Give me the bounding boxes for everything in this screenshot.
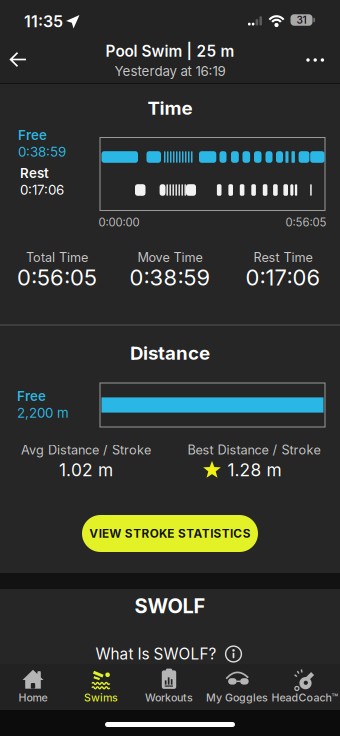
staticText: 1.28 m [227, 460, 281, 480]
staticText: Workouts [145, 691, 193, 704]
staticText: 0:17:06 [20, 182, 64, 198]
button[interactable]: HeadCoach™ [270, 664, 340, 708]
staticText: Free [18, 127, 47, 143]
staticText: Distance [130, 342, 210, 364]
button[interactable]: Swims [66, 664, 136, 708]
staticText: Rest Time [253, 250, 312, 265]
button[interactable]: My Goggles [202, 664, 272, 708]
staticText: 1.02 m [59, 460, 113, 480]
staticText: Best Distance / Stroke [187, 442, 320, 457]
staticText: 0:38:59 [129, 264, 210, 291]
button[interactable]: More options [293, 38, 337, 82]
staticText: Free [17, 388, 46, 404]
button[interactable]: Back [2, 37, 46, 81]
button[interactable]: VIEW STROKE STATISTICS [82, 515, 258, 552]
button[interactable]: Home [0, 664, 68, 708]
staticText: 0:00:00 [98, 216, 139, 229]
staticText: 2,200 m [17, 405, 69, 421]
staticText: Swims [84, 691, 118, 704]
button[interactable]: Workouts [134, 664, 204, 708]
staticText: 0:17:06 [245, 264, 320, 291]
staticText: 31 [296, 14, 306, 26]
staticText: What Is SWOLF? [95, 645, 216, 663]
staticText: Yesterday at 16:19 [114, 63, 225, 79]
staticText: VIEW STROKE STATISTICS [89, 526, 251, 540]
staticText: Time [147, 97, 192, 119]
staticText: 0:56:05 [285, 216, 326, 229]
button[interactable]: What Is SWOLF? [95, 645, 242, 663]
staticText: Rest [20, 165, 49, 181]
staticText: Move Time [137, 250, 202, 265]
staticText: 11:35 [24, 12, 63, 31]
staticText: My Goggles [206, 691, 268, 704]
staticText: HeadCoach™ [271, 691, 338, 704]
staticText: Home [18, 691, 47, 704]
staticText: 0:38:59 [18, 144, 66, 160]
staticText: Pool Swim | 25 m [105, 42, 234, 60]
staticText: Avg Distance / Stroke [21, 442, 151, 457]
staticText: SWOLF [134, 594, 205, 618]
staticText: Total Time [26, 250, 88, 265]
staticText: 0:56:05 [17, 264, 97, 291]
